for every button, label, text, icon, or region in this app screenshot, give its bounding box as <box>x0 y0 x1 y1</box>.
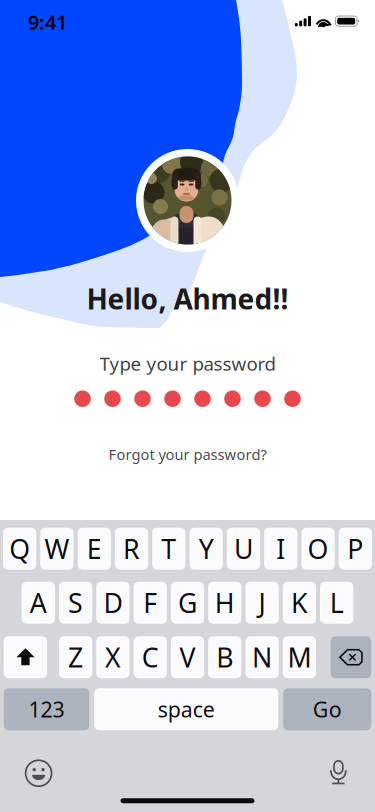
staticText: K <box>291 585 308 620</box>
button[interactable]: W <box>40 528 74 570</box>
button[interactable]: 123 <box>4 688 89 730</box>
button[interactable]: H <box>208 582 241 624</box>
button[interactable]: Delete <box>331 636 371 678</box>
staticText: Y <box>199 531 214 566</box>
button[interactable]: N <box>245 636 279 678</box>
staticText: Go <box>313 695 342 723</box>
button[interactable]: X <box>96 636 129 678</box>
button[interactable]: Shift <box>4 636 47 678</box>
button[interactable]: space <box>94 688 278 730</box>
button[interactable]: L <box>320 582 353 624</box>
button[interactable]: I <box>264 528 297 570</box>
staticText: M <box>287 639 311 675</box>
button[interactable]: V <box>171 636 204 678</box>
staticText: V <box>179 639 195 675</box>
staticText: X <box>105 639 121 675</box>
button[interactable]: Z <box>59 636 92 678</box>
button[interactable]: R <box>115 528 148 570</box>
button[interactable]: E <box>78 528 111 570</box>
staticText: P <box>347 531 363 566</box>
staticText: Q <box>9 531 30 566</box>
staticText: I <box>276 531 285 566</box>
staticText: H <box>215 585 235 620</box>
button[interactable]: P <box>339 528 372 570</box>
staticText: C <box>142 639 159 675</box>
button[interactable]: C <box>133 636 167 678</box>
staticText: B <box>216 639 233 675</box>
button[interactable]: Y <box>189 528 223 570</box>
staticText: S <box>68 585 83 620</box>
staticText: F <box>143 585 157 620</box>
staticText: J <box>259 585 266 620</box>
button[interactable]: O <box>301 528 335 570</box>
staticText: Z <box>68 639 83 675</box>
button[interactable]: A <box>22 582 55 624</box>
button[interactable]: Forgot your password? <box>100 440 274 468</box>
staticText: Forgot your password? <box>108 444 266 464</box>
button[interactable]: D <box>96 582 129 624</box>
button[interactable]: S <box>59 582 92 624</box>
staticText: 123 <box>28 695 64 723</box>
staticText: U <box>234 531 253 566</box>
staticText: N <box>252 639 272 675</box>
staticText: R <box>123 531 140 566</box>
button[interactable]: B <box>208 636 241 678</box>
button[interactable]: Emoji <box>24 758 54 788</box>
staticText: A <box>30 585 47 620</box>
staticText: E <box>87 531 102 566</box>
staticText: L <box>330 585 344 620</box>
button[interactable]: M <box>283 636 316 678</box>
button[interactable]: Q <box>3 528 36 570</box>
button[interactable]: F <box>133 582 167 624</box>
button[interactable]: J <box>245 582 279 624</box>
button[interactable]: K <box>283 582 316 624</box>
button[interactable]: T <box>152 528 185 570</box>
staticText: T <box>161 531 176 566</box>
staticText: space <box>158 695 215 723</box>
staticText: D <box>103 585 122 620</box>
button[interactable]: G <box>171 582 204 624</box>
staticText: Hello, Ahmed!! <box>86 280 288 317</box>
staticText: Type your password <box>99 351 275 376</box>
staticText: W <box>44 531 69 566</box>
staticText: G <box>178 585 197 620</box>
staticText: 9:41 <box>28 9 67 35</box>
staticText: O <box>307 531 328 566</box>
button[interactable]: Dictate <box>325 759 351 787</box>
button[interactable]: U <box>227 528 260 570</box>
button[interactable]: Go <box>283 688 371 730</box>
